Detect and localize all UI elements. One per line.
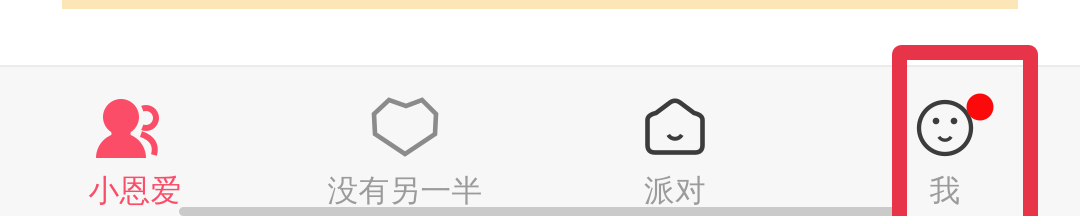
staticText: 我 [929,172,960,210]
button[interactable]: 派对 [540,65,810,216]
staticText: 派对 [644,172,706,210]
button[interactable]: 我 [810,65,1080,216]
button[interactable]: 小恩爱 [0,65,270,216]
staticText: 小恩爱 [88,172,181,210]
staticText: 没有另一半 [327,172,482,210]
button[interactable]: 没有另一半 [270,65,540,216]
